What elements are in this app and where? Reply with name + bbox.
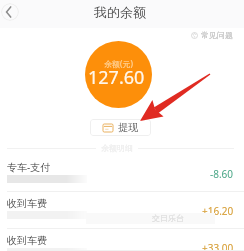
button[interactable]: 收到车费 xyxy=(0,229,244,251)
staticText: 提现 xyxy=(118,121,138,134)
staticText: 常见问题 xyxy=(201,30,233,40)
staticText: +33.00 xyxy=(202,241,234,251)
staticText: 我的余额 xyxy=(94,4,146,20)
staticText: 余额明细 xyxy=(101,143,133,153)
staticText: 收到车费 xyxy=(7,197,47,210)
button[interactable]: Back xyxy=(1,3,19,21)
button[interactable]: 常见问题 xyxy=(191,30,233,40)
button[interactable]: 专车-支付 xyxy=(0,155,244,192)
staticText: -8.60 xyxy=(210,167,234,181)
staticText: 专车-支付 xyxy=(7,160,51,174)
staticText: 收到车费 xyxy=(7,234,47,247)
button[interactable]: 提现 xyxy=(90,119,151,136)
staticText: 余额(元) xyxy=(104,58,133,69)
staticText: 交日乐台 xyxy=(152,213,184,223)
button[interactable]: 收到车费 xyxy=(0,192,244,229)
staticText: 127.60 xyxy=(88,65,145,90)
staticText: +16.20 xyxy=(202,204,234,218)
